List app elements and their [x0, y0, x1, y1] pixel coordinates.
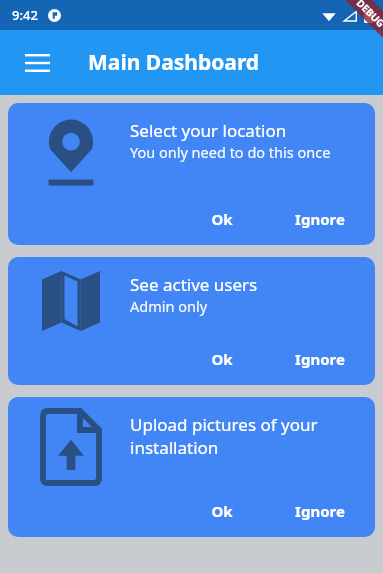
staticText: Upload pictures of your installation [130, 413, 361, 459]
staticText: Select your location [130, 119, 287, 142]
staticText: Ok [211, 501, 233, 521]
button[interactable]: Ok [205, 497, 239, 525]
button[interactable]: Open navigation menu [13, 39, 61, 87]
button[interactable]: See active users [8, 257, 375, 385]
staticText: Ignore [295, 349, 345, 369]
button[interactable]: Ignore [289, 345, 351, 373]
staticText: Ignore [295, 501, 345, 521]
staticText: DEBUG [354, 0, 383, 30]
staticText: See active users [130, 273, 258, 296]
staticText: You only need to do this once [130, 142, 331, 162]
staticText: Ok [211, 209, 233, 229]
staticText: 9:42 [12, 6, 38, 24]
button[interactable]: Ok [205, 345, 239, 373]
staticText: Main Dashboard [88, 48, 260, 77]
staticText: Ignore [295, 209, 345, 229]
staticText: Admin only [130, 296, 208, 316]
staticText: Ok [211, 349, 233, 369]
button[interactable]: Ignore [289, 497, 351, 525]
button[interactable]: Ok [205, 205, 239, 233]
button[interactable]: Select your location [8, 103, 375, 245]
button[interactable]: Ignore [289, 205, 351, 233]
button[interactable]: Upload pictures of your installation [8, 397, 375, 537]
